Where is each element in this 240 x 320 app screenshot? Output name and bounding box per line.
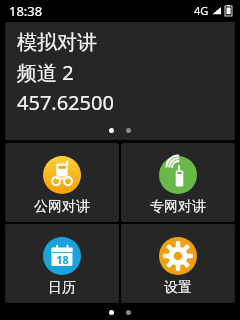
button[interactable]: 日历 xyxy=(5,224,119,303)
staticText: 模拟对讲 xyxy=(17,30,97,55)
button[interactable]: 专网对讲 xyxy=(121,143,235,222)
other: 日历 xyxy=(43,237,81,275)
button[interactable]: 模拟对讲 xyxy=(5,22,235,140)
staticText: 设置 xyxy=(164,279,192,297)
staticText: 频道 2 xyxy=(17,59,74,86)
button[interactable]: 设置 xyxy=(121,224,235,303)
other: 专网对讲 xyxy=(159,156,197,194)
staticText: 公网对讲 xyxy=(34,198,90,216)
other: 设置 xyxy=(159,237,197,275)
staticText: 专网对讲 xyxy=(150,198,206,216)
staticText: 18:38 xyxy=(9,2,43,20)
other: 公网对讲 xyxy=(43,156,81,194)
staticText: 18 xyxy=(56,252,69,267)
staticText: 457.62500 xyxy=(17,89,114,116)
button[interactable]: 公网对讲 xyxy=(5,143,119,222)
staticText: 日历 xyxy=(48,279,76,297)
staticText: 4G xyxy=(194,3,209,18)
